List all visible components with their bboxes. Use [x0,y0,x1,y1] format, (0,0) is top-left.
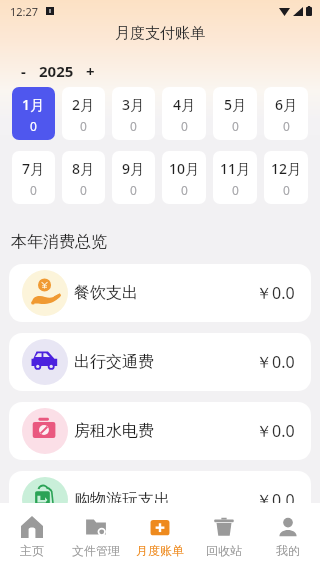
staticText: 0 [181,118,188,134]
staticText: 主页 [20,543,44,558]
staticText: 月度账单 [136,543,184,558]
button[interactable]: 出行交通费 [9,333,311,391]
staticText: 回收站 [206,543,242,558]
button[interactable]: 1月 [12,87,55,140]
staticText: 1月 [22,95,45,114]
button[interactable]: 我的 [256,503,320,568]
staticText: + [86,61,95,81]
staticText: - [21,61,26,81]
staticText: 12月 [271,159,302,178]
staticText: 6月 [275,95,298,114]
staticText: 5月 [224,95,247,114]
button[interactable]: 5月 [213,87,257,140]
staticText: 0 [283,118,290,134]
button[interactable]: 餐饮支出 [9,264,311,322]
button[interactable]: 房租水电费 [9,402,311,460]
staticText: 餐饮支出 [74,283,138,303]
button[interactable]: 7月 [12,151,55,204]
button[interactable]: 回收站 [192,503,256,568]
button[interactable]: 月度账单 [128,503,192,568]
staticText: 4月 [173,95,196,114]
button[interactable]: 2月 [62,87,105,140]
staticText: 7月 [22,159,45,178]
staticText: 12:27 [10,4,39,19]
staticText: 文件管理 [72,543,120,558]
button[interactable]: 文件管理 [64,503,128,568]
staticText: ￥0.0 [256,420,295,442]
button[interactable]: 3月 [112,87,155,140]
staticText: ￥0.0 [256,489,295,511]
staticText: 0 [30,182,37,198]
staticText: 出行交通费 [74,352,154,372]
button[interactable]: 11月 [213,151,257,204]
staticText: 0 [80,182,87,198]
button[interactable]: 12月 [264,151,308,204]
button[interactable]: 10月 [162,151,206,204]
staticText: 3月 [122,95,145,114]
staticText: 0 [232,182,239,198]
staticText: ￥0.0 [256,351,295,373]
staticText: 购物游玩支出 [74,490,170,510]
staticText: 0 [232,118,239,134]
staticText: 2月 [72,95,95,114]
button[interactable]: 8月 [62,151,105,204]
button[interactable]: 4月 [162,87,206,140]
staticText: 我的 [276,543,300,558]
button[interactable]: 购物游玩支出 [9,471,311,529]
staticText: 0 [181,182,188,198]
button[interactable]: 6月 [264,87,308,140]
button[interactable]: 9月 [112,151,155,204]
button[interactable]: Previous year [13,61,33,81]
staticText: 9月 [122,159,145,178]
button[interactable]: 主页 [0,503,64,568]
staticText: 8月 [72,159,95,178]
staticText: 0 [130,118,137,134]
staticText: 月度支付账单 [115,24,205,43]
staticText: ￥0.0 [256,282,295,304]
staticText: 房租水电费 [74,421,154,441]
staticText: 10月 [169,159,200,178]
button[interactable]: Next year [80,61,100,81]
staticText: 0 [30,118,37,134]
staticText: 11月 [220,159,251,178]
staticText: 2025 [39,61,74,81]
staticText: 0 [283,182,290,198]
staticText: 0 [130,182,137,198]
staticText: 0 [80,118,87,134]
staticText: 本年消费总览 [11,232,107,252]
